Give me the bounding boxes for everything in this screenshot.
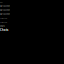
staticText: Marcus Chen <box>0 13 10 15</box>
staticText: 9:41 <box>0 1 3 3</box>
staticText: Chats <box>0 28 8 32</box>
staticText: Marcus Chen <box>0 5 10 7</box>
staticText: Active now <box>0 17 7 19</box>
staticText: Active now <box>0 21 7 23</box>
staticText: Marcus Chen <box>0 9 10 11</box>
staticText: Chats <box>0 25 5 27</box>
